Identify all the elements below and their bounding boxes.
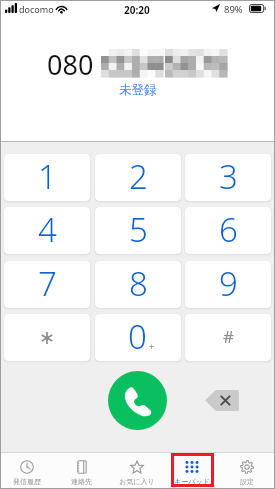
button[interactable]: 8: [95, 261, 181, 308]
button[interactable]: キーパッド: [164, 453, 219, 489]
button[interactable]: [4, 314, 90, 361]
staticText: 3: [219, 154, 238, 199]
staticText: 2: [129, 154, 148, 199]
button[interactable]: 3: [185, 154, 271, 201]
staticText: 1: [38, 154, 57, 199]
button[interactable]: 9: [185, 261, 271, 308]
staticText: 080: [47, 46, 94, 83]
staticText: 連絡先: [71, 477, 92, 486]
button[interactable]: #: [185, 314, 271, 361]
staticText: 0: [128, 314, 147, 359]
button[interactable]: 0: [95, 314, 181, 361]
button[interactable]: 6: [185, 207, 271, 254]
staticText: 89%: [224, 3, 243, 16]
staticText: 8: [129, 261, 148, 306]
staticText: 9: [219, 261, 238, 306]
button[interactable]: 2: [95, 154, 181, 201]
staticText: お気に入り: [119, 477, 155, 486]
button[interactable]: お気に入り: [109, 453, 164, 489]
staticText: 4: [38, 207, 57, 252]
button[interactable]: 4: [4, 207, 90, 254]
staticText: 設定: [240, 477, 254, 486]
staticText: +: [149, 340, 155, 352]
staticText: 7: [38, 261, 57, 306]
button[interactable]: Delete: [205, 390, 239, 411]
button[interactable]: 連絡先: [54, 453, 109, 489]
staticText: 6: [219, 207, 238, 252]
button[interactable]: 設定: [219, 453, 274, 489]
staticText: #: [223, 325, 234, 348]
staticText: 発信履歴: [13, 477, 41, 486]
button[interactable]: 未登録: [119, 82, 157, 98]
button[interactable]: 発信履歴: [0, 453, 54, 489]
button[interactable]: Call: [108, 371, 167, 430]
staticText: キーパッド: [174, 477, 210, 486]
button[interactable]: 1: [4, 154, 90, 201]
staticText: 5: [129, 207, 148, 252]
staticText: docomo: [19, 3, 54, 15]
staticText: 20:20: [124, 3, 150, 17]
button[interactable]: 7: [4, 261, 90, 308]
button[interactable]: 5: [95, 207, 181, 254]
